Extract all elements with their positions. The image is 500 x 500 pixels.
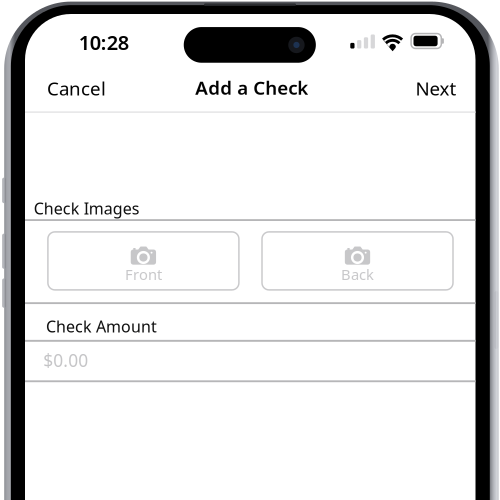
staticText: Check Amount [46, 316, 157, 337]
staticText: Add a Check [195, 75, 308, 100]
button[interactable]: $0.00 [25, 341, 475, 380]
staticText: Next [415, 76, 456, 101]
staticText: $0.00 [43, 349, 88, 372]
staticText: Back [341, 265, 374, 284]
staticText: Check Images [34, 198, 140, 219]
staticText: Front [125, 265, 162, 284]
staticText: Cancel [47, 76, 106, 101]
button[interactable]: Next [388, 67, 456, 109]
button[interactable]: Front [48, 232, 239, 290]
button[interactable]: Cancel [47, 67, 125, 109]
staticText: 10:28 [79, 29, 129, 55]
button[interactable]: Back [262, 232, 453, 290]
